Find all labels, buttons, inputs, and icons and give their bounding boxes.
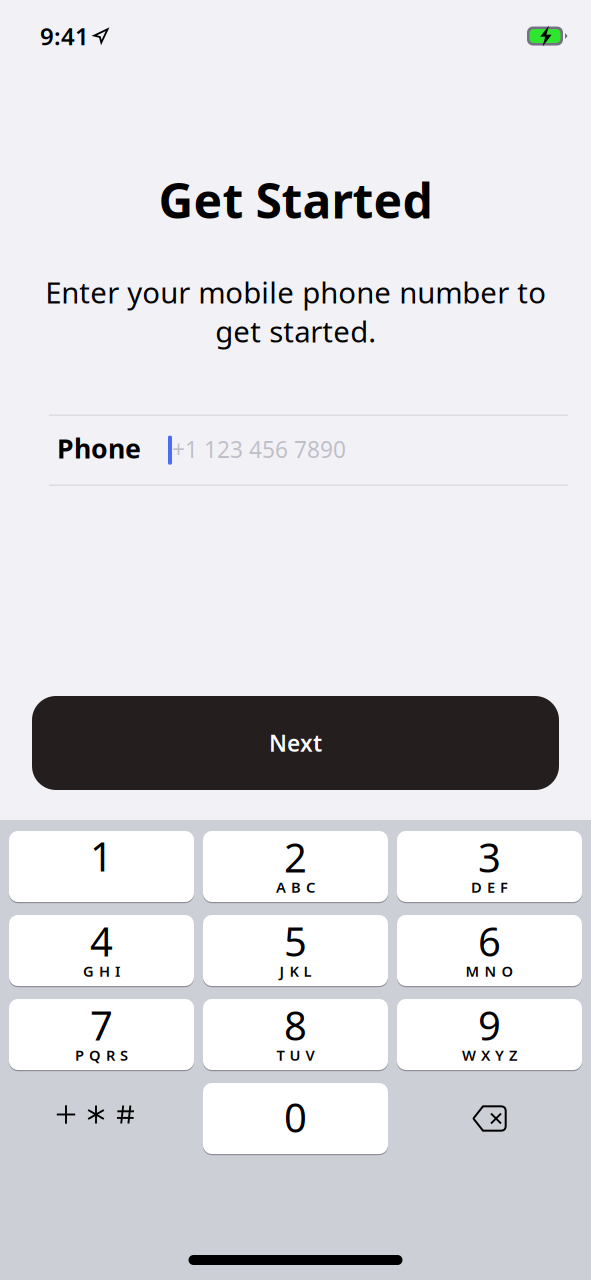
staticText: U xyxy=(289,1045,300,1065)
staticText: S xyxy=(120,1045,128,1065)
staticText: +1 123 456 7890 xyxy=(172,434,346,464)
button[interactable]: 2 xyxy=(203,831,388,902)
staticText: E xyxy=(487,877,495,897)
staticText: 8 xyxy=(284,998,307,1051)
staticText: V xyxy=(305,1045,314,1065)
staticText: C xyxy=(306,877,315,897)
staticText: 1 xyxy=(90,829,113,882)
button[interactable]: 9 xyxy=(397,999,582,1070)
staticText: 9 xyxy=(478,998,501,1051)
staticText: G xyxy=(83,961,94,981)
staticText: T xyxy=(276,1045,284,1065)
staticText: B xyxy=(291,877,301,897)
button[interactable]: 5 xyxy=(203,915,388,986)
staticText: Y xyxy=(495,1045,504,1065)
staticText: H xyxy=(99,961,110,981)
staticText: M xyxy=(465,961,479,981)
staticText: Q xyxy=(89,1045,101,1065)
button[interactable]: 4 xyxy=(9,915,194,986)
staticText: 9:41 xyxy=(40,20,89,52)
staticText: 7 xyxy=(90,998,113,1051)
staticText: Enter your mobile phone number to get st… xyxy=(45,273,546,351)
staticText: I xyxy=(115,961,120,981)
button[interactable]: 6 xyxy=(397,915,582,986)
staticText: A xyxy=(276,877,286,897)
staticText: Next xyxy=(269,728,322,758)
staticText: N xyxy=(484,961,496,981)
button[interactable]: Next xyxy=(32,696,559,790)
button[interactable]: Symbols xyxy=(9,1083,194,1154)
staticText: Get Started xyxy=(158,168,432,232)
staticText: 6 xyxy=(478,914,501,967)
button[interactable]: 7 xyxy=(9,999,194,1070)
staticText: R xyxy=(106,1045,115,1065)
staticText: 4 xyxy=(90,914,113,967)
button[interactable]: 8 xyxy=(203,999,388,1070)
staticText: 5 xyxy=(284,914,307,967)
button[interactable]: 0 xyxy=(203,1083,388,1154)
staticText: D xyxy=(471,877,482,897)
staticText: 0 xyxy=(284,1090,307,1143)
button[interactable]: 3 xyxy=(397,831,582,902)
button[interactable]: 1 xyxy=(9,831,194,902)
staticText: Phone xyxy=(57,430,141,466)
staticText: K xyxy=(289,961,298,981)
staticText: O xyxy=(501,961,513,981)
staticText: P xyxy=(75,1045,84,1065)
staticText: 3 xyxy=(478,830,501,883)
staticText: Z xyxy=(509,1045,517,1065)
staticText: W xyxy=(462,1045,476,1065)
staticText: J xyxy=(279,961,284,981)
button[interactable]: Delete xyxy=(397,1083,582,1154)
staticText: L xyxy=(303,961,311,981)
staticText: F xyxy=(500,877,508,897)
staticText: 2 xyxy=(284,830,307,883)
staticText: X xyxy=(481,1045,490,1065)
